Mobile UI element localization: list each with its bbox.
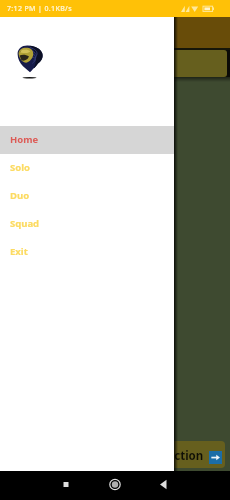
- staticText: Squad: [10, 217, 40, 230]
- staticText: Duo: [10, 189, 30, 202]
- button[interactable]: Home: [0, 126, 174, 154]
- other: System navigation: [0, 471, 230, 500]
- staticText: Home: [10, 133, 39, 146]
- button[interactable]: Solo: [0, 154, 174, 182]
- other: App logo: [17, 45, 43, 81]
- staticText: Exit: [10, 245, 28, 258]
- button[interactable]: Select collection: [102, 441, 225, 468]
- button[interactable]: Exit: [0, 238, 174, 266]
- staticText: 7:12 PM | 0.1KB/s: [7, 4, 72, 14]
- button[interactable]: Duo: [0, 182, 174, 210]
- button[interactable]: Squad: [0, 210, 174, 238]
- staticText: Solo: [10, 161, 30, 174]
- staticText: Select collection: [110, 448, 204, 464]
